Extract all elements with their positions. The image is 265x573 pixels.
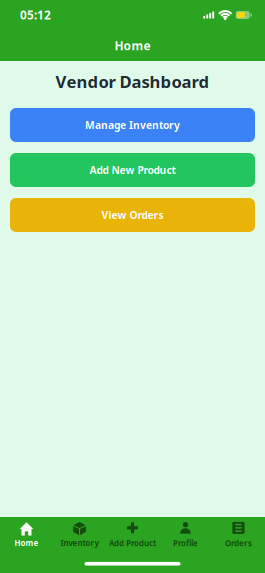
button[interactable]: Home bbox=[0, 30, 265, 61]
button[interactable]: Orders bbox=[212, 516, 265, 554]
staticText: Home bbox=[14, 537, 38, 548]
staticText: Inventory bbox=[60, 537, 98, 548]
button[interactable]: Profile bbox=[159, 516, 212, 554]
button[interactable]: View Orders bbox=[10, 198, 255, 232]
button[interactable]: Add Product bbox=[106, 516, 159, 554]
staticText: Manage Inventory bbox=[85, 118, 180, 132]
button[interactable]: Inventory bbox=[53, 516, 106, 554]
button[interactable]: Manage Inventory bbox=[10, 108, 255, 142]
staticText: Add Product bbox=[109, 538, 156, 548]
staticText: Orders bbox=[225, 538, 252, 548]
button[interactable]: Add New Product bbox=[10, 153, 255, 187]
staticText: View Orders bbox=[101, 208, 163, 222]
staticText: Profile bbox=[173, 538, 198, 548]
staticText: Add New Product bbox=[89, 163, 175, 177]
staticText: 05:12 bbox=[20, 7, 51, 23]
staticText: Vendor Dashboard bbox=[55, 70, 209, 93]
staticText: Home bbox=[114, 37, 150, 54]
button[interactable]: Home bbox=[0, 516, 53, 554]
